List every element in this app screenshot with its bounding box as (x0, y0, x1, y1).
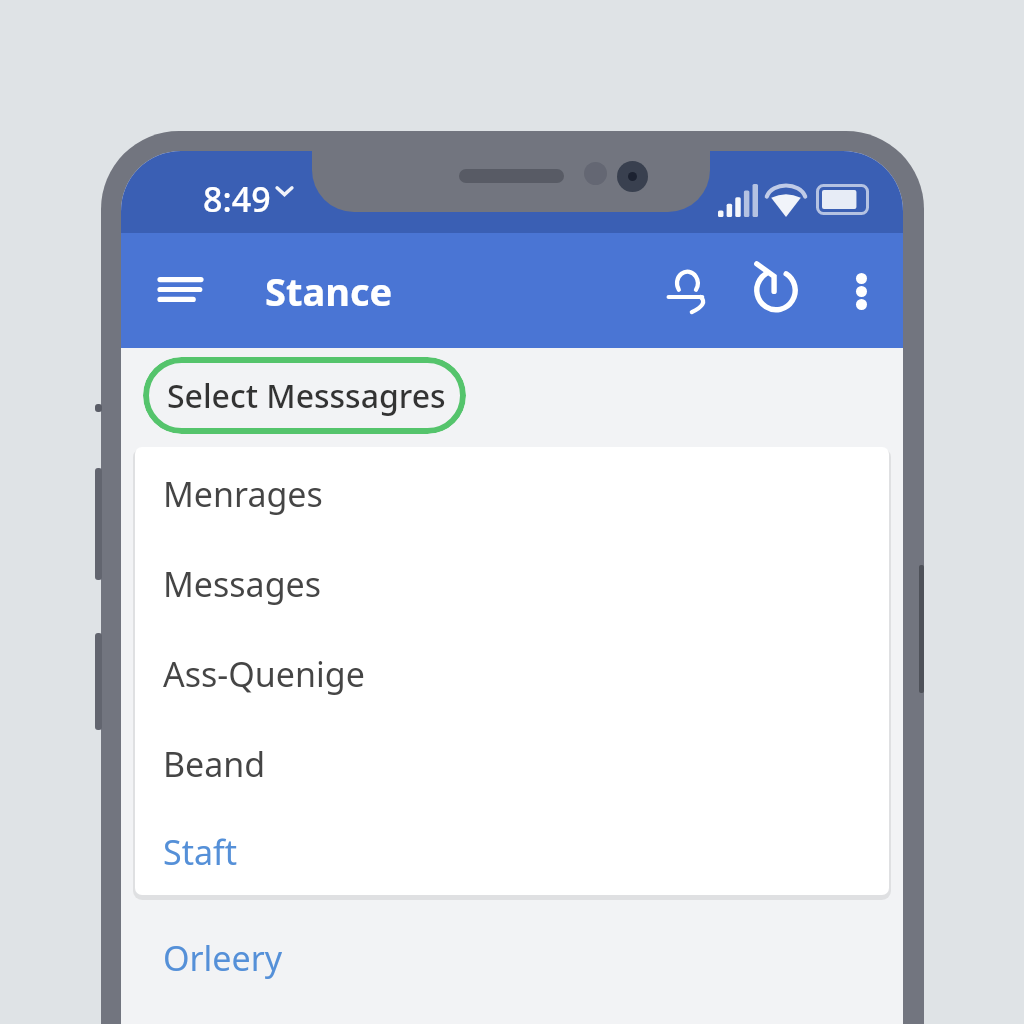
button[interactable]: More options (831, 261, 891, 321)
button[interactable]: Select Messsagres (143, 357, 466, 434)
staticText: Beand (163, 741, 266, 787)
staticText: Staft (163, 829, 237, 875)
button[interactable]: Staft (135, 809, 889, 895)
staticText: 8:49 (203, 176, 271, 222)
staticText: Stance (265, 265, 393, 317)
button[interactable]: Account (639, 259, 735, 323)
button[interactable]: Open navigation menu (139, 259, 221, 319)
button[interactable]: Orleery (121, 913, 903, 1003)
staticText: Select Messsagres (167, 374, 446, 418)
button[interactable]: Messages (135, 539, 889, 629)
staticText: Menrages (163, 471, 323, 517)
button[interactable]: Ass-Quenige (135, 629, 889, 719)
button[interactable]: Beand (135, 719, 889, 809)
staticText: Ass-Quenige (163, 651, 365, 697)
button[interactable]: Menrages (135, 449, 889, 539)
staticText: Orleery (163, 935, 283, 981)
staticText: Messages (163, 561, 322, 607)
button[interactable]: Refresh (729, 253, 823, 319)
